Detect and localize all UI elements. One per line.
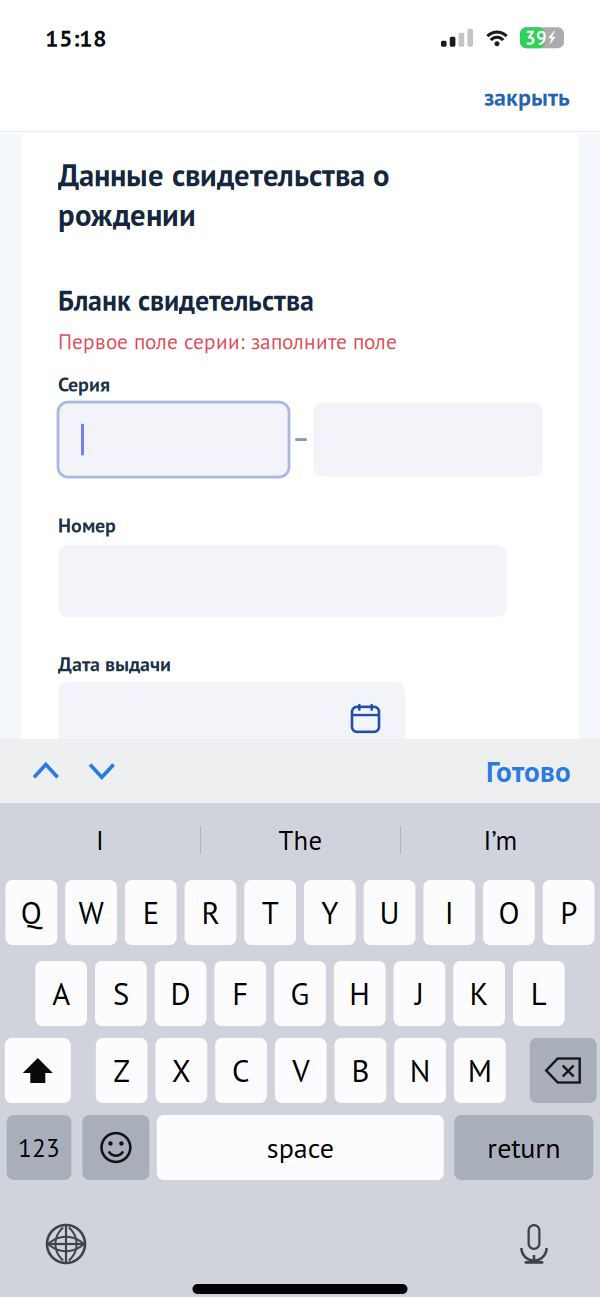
- staticText: F: [232, 974, 248, 1013]
- button[interactable]: E: [125, 880, 177, 945]
- button[interactable]: Emoji: [82, 1115, 149, 1180]
- staticText: C: [232, 1051, 250, 1090]
- staticText: P: [560, 893, 577, 932]
- button[interactable]: T: [244, 880, 296, 945]
- button[interactable]: Delete: [530, 1038, 597, 1103]
- button[interactable]: закрыть: [484, 55, 600, 139]
- staticText: Серия: [58, 371, 110, 397]
- button[interactable]: Switch keyboard: [34, 1216, 98, 1272]
- staticText: N: [410, 1051, 431, 1090]
- staticText: D: [171, 974, 191, 1013]
- staticText: W: [79, 893, 104, 932]
- staticText: J: [415, 974, 424, 1013]
- button[interactable]: 123: [7, 1115, 71, 1180]
- button[interactable]: Next field: [76, 739, 128, 803]
- button[interactable]: I’m: [401, 803, 600, 877]
- button[interactable]: S: [95, 961, 147, 1026]
- staticText: S: [113, 974, 129, 1013]
- button[interactable]: A: [35, 961, 87, 1026]
- staticText: U: [380, 893, 400, 932]
- staticText: 39: [525, 26, 547, 50]
- button[interactable]: V: [275, 1038, 327, 1103]
- staticText: I: [96, 823, 104, 857]
- button[interactable]: O: [483, 880, 535, 945]
- staticText: Первое поле серии: заполните поле: [58, 328, 397, 355]
- button[interactable]: M: [454, 1038, 506, 1103]
- button[interactable]: D: [155, 961, 206, 1026]
- button[interactable]: I: [423, 880, 475, 945]
- button[interactable]: F: [214, 961, 266, 1026]
- button[interactable]: R: [185, 880, 236, 945]
- button[interactable]: I: [0, 803, 200, 877]
- staticText: Данные свидетельства о рождении: [58, 155, 389, 234]
- staticText: E: [143, 893, 159, 932]
- button[interactable]: C: [215, 1038, 267, 1103]
- staticText: space: [267, 1129, 334, 1166]
- staticText: Z: [113, 1051, 130, 1090]
- button[interactable]: X: [155, 1038, 207, 1103]
- staticText: H: [349, 974, 370, 1013]
- staticText: K: [470, 974, 489, 1013]
- button[interactable]: Готово: [486, 739, 600, 803]
- button[interactable]: L: [513, 961, 565, 1026]
- button[interactable]: J: [394, 961, 445, 1026]
- staticText: B: [351, 1051, 369, 1090]
- button[interactable]: W: [65, 880, 117, 945]
- staticText: A: [52, 974, 70, 1013]
- staticText: Дата выдачи: [58, 651, 171, 677]
- button[interactable]: B: [335, 1038, 386, 1103]
- button[interactable]: Shift: [5, 1038, 71, 1103]
- button[interactable]: return: [454, 1115, 593, 1180]
- staticText: 15:18: [45, 22, 107, 53]
- staticText: R: [201, 893, 219, 932]
- button[interactable]: P: [543, 880, 594, 945]
- staticText: Бланк свидетельства: [58, 282, 314, 319]
- staticText: V: [292, 1051, 309, 1090]
- staticText: The: [278, 823, 322, 857]
- staticText: I’m: [483, 823, 517, 857]
- button[interactable]: G: [274, 961, 326, 1026]
- staticText: закрыть: [484, 81, 570, 112]
- staticText: return: [487, 1129, 560, 1166]
- button[interactable]: The: [201, 803, 400, 877]
- staticText: X: [172, 1051, 191, 1090]
- staticText: L: [531, 974, 547, 1013]
- button[interactable]: Dictation: [502, 1216, 566, 1272]
- button[interactable]: Y: [304, 880, 356, 945]
- staticText: M: [468, 1051, 492, 1090]
- staticText: I: [445, 893, 454, 932]
- button[interactable]: Z: [96, 1038, 147, 1103]
- staticText: Готово: [486, 752, 571, 790]
- staticText: G: [290, 974, 309, 1013]
- staticText: O: [498, 893, 519, 932]
- button[interactable]: N: [394, 1038, 446, 1103]
- staticText: Номер: [58, 512, 116, 538]
- staticText: Q: [21, 893, 42, 932]
- button[interactable]: space: [157, 1115, 444, 1180]
- staticText: T: [262, 893, 279, 932]
- button[interactable]: K: [453, 961, 505, 1026]
- button[interactable]: U: [364, 880, 415, 945]
- button[interactable]: H: [334, 961, 386, 1026]
- button[interactable]: Q: [5, 880, 57, 945]
- button[interactable]: Previous field: [20, 739, 72, 803]
- staticText: Y: [321, 893, 338, 932]
- staticText: 123: [18, 1131, 60, 1164]
